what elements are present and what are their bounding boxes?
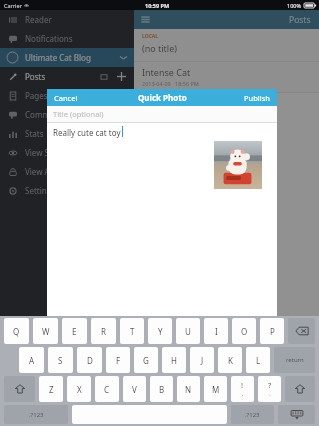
button[interactable]: I xyxy=(204,318,228,344)
button[interactable]: Backspace xyxy=(288,318,315,344)
button[interactable]: Q xyxy=(4,318,29,344)
staticText: LOCAL xyxy=(142,33,159,40)
button[interactable]: E xyxy=(62,318,87,344)
button[interactable]: return xyxy=(274,347,315,373)
button[interactable]: Comments xyxy=(0,105,134,124)
staticText: Posts xyxy=(25,71,46,82)
button[interactable]: J xyxy=(190,347,214,373)
button[interactable]: Publish xyxy=(237,89,277,106)
staticText: Carrier xyxy=(4,2,22,9)
staticText: D xyxy=(87,355,93,366)
staticText: B xyxy=(159,384,165,395)
button[interactable]: Posts xyxy=(0,67,134,86)
button[interactable]: View Site xyxy=(0,143,134,162)
staticText: Settings xyxy=(25,185,56,196)
staticText: K xyxy=(228,355,233,366)
staticText: H xyxy=(171,355,177,366)
button[interactable]: Z xyxy=(39,376,63,402)
button[interactable]: Ultimate Cat Blog xyxy=(0,48,134,67)
button[interactable]: X xyxy=(67,376,91,402)
staticText: Q xyxy=(13,326,20,337)
staticText: W xyxy=(42,326,50,337)
button[interactable]: Notifications xyxy=(0,29,134,48)
staticText: L xyxy=(256,355,261,366)
staticText: R xyxy=(101,326,106,337)
button[interactable]: ! xyxy=(231,376,254,402)
button[interactable]: P xyxy=(260,318,284,344)
button[interactable]: .?123 xyxy=(231,405,274,424)
button[interactable]: Cancel xyxy=(47,89,85,106)
staticText: Quick Photo xyxy=(138,92,187,103)
button[interactable]: Stats xyxy=(0,124,134,143)
staticText: Stats xyxy=(25,128,44,139)
staticText: E xyxy=(72,326,77,337)
button[interactable]: Intense Cat xyxy=(134,62,319,92)
staticText: N xyxy=(185,384,192,395)
staticText: return xyxy=(286,356,304,364)
staticText: C xyxy=(104,384,110,395)
button[interactable]: A xyxy=(19,347,44,373)
staticText: ! xyxy=(241,380,244,390)
staticText: Title (optional) xyxy=(53,109,104,119)
button[interactable]: Reader xyxy=(0,10,134,29)
staticText: (no title) xyxy=(142,42,177,54)
button[interactable]: L xyxy=(246,347,270,373)
button[interactable]: Pages xyxy=(0,86,134,105)
staticText: View Site xyxy=(25,147,59,158)
button[interactable]: W xyxy=(33,318,58,344)
button[interactable]: D xyxy=(77,347,102,373)
button[interactable]: Shift xyxy=(285,376,315,402)
button[interactable]: Y xyxy=(148,318,172,344)
staticText: Publish xyxy=(244,93,270,103)
button[interactable]: N xyxy=(177,376,200,402)
staticText: Ultimate Cat Blog xyxy=(25,52,91,63)
button[interactable]: H xyxy=(162,347,186,373)
button[interactable]: M xyxy=(204,376,227,402)
staticText: T xyxy=(130,326,135,337)
button[interactable]: LOCAL xyxy=(134,29,319,61)
staticText: Cancel xyxy=(54,93,78,103)
button[interactable]: Title (optional) xyxy=(47,106,277,122)
staticText: G xyxy=(143,355,149,366)
button[interactable]: R xyxy=(91,318,116,344)
button[interactable]: K xyxy=(218,347,242,373)
staticText: M xyxy=(212,384,220,395)
staticText: , xyxy=(242,390,244,398)
staticText: J xyxy=(201,355,204,366)
button[interactable]: Menu xyxy=(140,14,151,25)
button[interactable]: .?123 xyxy=(4,405,68,424)
staticText: .?123 xyxy=(245,411,260,419)
button[interactable]: ? xyxy=(258,376,281,402)
staticText: A xyxy=(29,355,35,366)
staticText: P xyxy=(270,326,275,337)
button[interactable]: F xyxy=(106,347,130,373)
staticText: V xyxy=(132,384,137,395)
staticText: 10:59 PM xyxy=(145,2,170,9)
staticText: Intense Cat xyxy=(142,66,191,78)
button[interactable]: C xyxy=(95,376,119,402)
button[interactable]: V xyxy=(123,376,146,402)
button[interactable]: O xyxy=(232,318,256,344)
button[interactable]: Shift xyxy=(4,376,35,402)
button[interactable]: U xyxy=(176,318,200,344)
button[interactable]: View Admin xyxy=(0,162,134,181)
button[interactable]: Settings xyxy=(0,181,134,200)
staticText: View Admin xyxy=(25,166,70,177)
button[interactable]: G xyxy=(134,347,158,373)
button[interactable]: S xyxy=(48,347,73,373)
button[interactable]: Hide keyboard xyxy=(278,405,315,424)
staticText: 100% xyxy=(287,2,302,9)
staticText: Comments xyxy=(25,109,67,120)
staticText: S xyxy=(58,355,63,366)
staticText: X xyxy=(77,384,82,395)
staticText: U xyxy=(185,326,191,337)
button[interactable]: Really cute cat toy xyxy=(47,123,277,316)
staticText: Pages xyxy=(25,90,48,101)
button[interactable]: T xyxy=(120,318,144,344)
staticText: . xyxy=(269,390,271,398)
staticText: O xyxy=(241,326,248,337)
staticText: Really cute cat toy xyxy=(53,127,121,138)
staticText: Reader xyxy=(25,14,52,25)
button[interactable]: B xyxy=(150,376,173,402)
